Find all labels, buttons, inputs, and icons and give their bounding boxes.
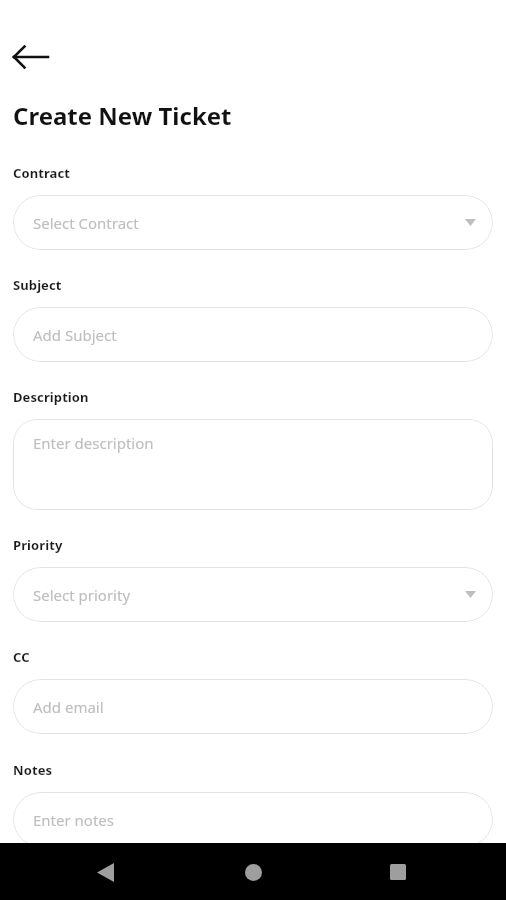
staticText: Priority (13, 536, 63, 554)
staticText: Select Contract (33, 213, 139, 233)
staticText: Description (13, 388, 89, 406)
staticText: Notes (13, 761, 53, 779)
button[interactable]: Back (13, 38, 57, 76)
button[interactable]: Home (234, 853, 272, 891)
button[interactable]: Recent apps (379, 853, 417, 891)
staticText: CC (13, 648, 30, 666)
button[interactable]: Enter description (13, 419, 493, 510)
button[interactable]: Select priority (13, 567, 493, 622)
button[interactable]: Back (86, 853, 124, 891)
button[interactable]: Enter notes (13, 792, 493, 847)
staticText: Add Subject (33, 325, 117, 345)
staticText: Select priority (33, 585, 131, 605)
button[interactable]: Add Subject (13, 307, 493, 362)
button[interactable]: Add email (13, 679, 493, 734)
button[interactable]: Select Contract (13, 195, 493, 250)
staticText: Subject (13, 276, 62, 294)
staticText: Add email (33, 697, 104, 717)
staticText: Enter notes (33, 810, 114, 830)
staticText: Create New Ticket (13, 99, 232, 132)
staticText: Contract (13, 164, 71, 182)
staticText: Enter description (33, 433, 154, 453)
